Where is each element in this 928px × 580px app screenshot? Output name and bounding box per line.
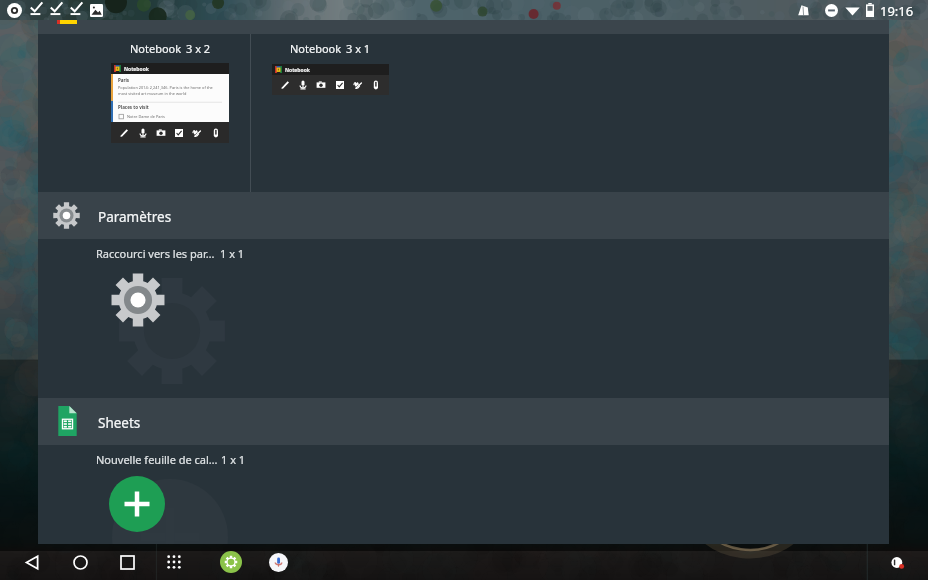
button[interactable]: Notification [880,544,914,580]
staticText: 1 x 1 [221,452,246,467]
staticText: Notebook [124,66,149,73]
staticText: Places to visit [118,104,149,110]
staticText: Notebook [285,67,310,74]
staticText: Notebook [290,41,342,56]
button[interactable]: Recents [110,544,144,580]
button[interactable]: Sheets [38,398,889,445]
staticText: most visited art museum in the world [118,91,187,96]
staticText: 19:16 [880,2,914,20]
button[interactable]: Back [15,544,49,580]
staticText: Paramètres [98,208,172,226]
button[interactable]: Voice search [261,544,295,580]
button[interactable]: Notebook [90,40,250,170]
button[interactable]: Settings [214,544,248,580]
button[interactable]: All apps [157,544,191,580]
staticText: Paris [118,77,130,83]
staticText: Population 2014: 2,241,346. Paris is the… [118,85,213,90]
staticText: Nouvelle feuille de cal… [96,452,218,467]
button[interactable]: Home [63,544,97,580]
staticText: Raccourci vers les par… [96,246,215,261]
button[interactable]: Notebook [250,40,410,170]
button[interactable]: Nouvelle feuille de cal… [93,445,313,544]
staticText: Notre Dame de Paris [127,114,165,119]
staticText: 3 x 1 [346,41,371,56]
staticText: Sheets [98,414,141,432]
staticText: 1 x 1 [220,246,245,261]
staticText: 3 x 2 [186,41,211,56]
button[interactable]: Raccourci vers les par… [93,239,313,398]
staticText: Notebook [130,41,182,56]
button[interactable]: Paramètres [38,192,889,239]
